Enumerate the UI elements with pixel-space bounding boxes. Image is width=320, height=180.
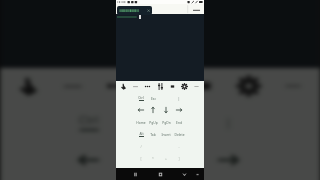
- button[interactable]: [117, 6, 152, 15]
- button[interactable]: Tab: [147, 128, 159, 140]
- button[interactable]: Stop: [187, 71, 220, 100]
- staticText: ]: [178, 156, 180, 160]
- button[interactable]: Settings sliders: [144, 71, 177, 100]
- button[interactable]: PgUp: [147, 116, 159, 128]
- button[interactable]: |: [173, 92, 185, 104]
- button[interactable]: Settings sliders: [156, 82, 165, 91]
- staticText: /: [140, 144, 142, 148]
- staticText: -: [178, 144, 180, 148]
- button[interactable]: Down: [160, 104, 172, 116]
- button[interactable]: Insert: [160, 128, 172, 140]
- button[interactable]: More: [143, 82, 152, 91]
- button[interactable]: Overflow: [192, 82, 201, 91]
- button[interactable]: [: [135, 152, 147, 164]
- button[interactable]: Copy: [131, 82, 140, 91]
- button[interactable]: Settings: [180, 82, 189, 91]
- staticText: *: [152, 156, 154, 160]
- button[interactable]: PgDn: [160, 116, 172, 128]
- button[interactable]: *: [147, 152, 159, 164]
- button[interactable]: Down: [160, 141, 202, 179]
- button[interactable]: Home: [135, 116, 147, 128]
- button[interactable]: Delete: [173, 128, 185, 140]
- button[interactable]: Alt: [135, 128, 147, 140]
- button[interactable]: End: [173, 116, 185, 128]
- button[interactable]: Dismiss keyboard: [130, 168, 140, 180]
- staticText: Ctrl: [138, 95, 144, 99]
- staticText: Alt: [139, 131, 144, 135]
- button[interactable]: Left: [135, 104, 147, 116]
- button[interactable]: Up: [147, 104, 159, 116]
- staticText: Esc: [151, 96, 156, 100]
- button[interactable]: Keyboard: [119, 82, 128, 91]
- button[interactable]: Left: [67, 141, 109, 179]
- button[interactable]: More: [100, 71, 133, 100]
- button[interactable]: Settings: [232, 71, 265, 100]
- button[interactable]: Keyboard: [192, 168, 202, 180]
- button[interactable]: Recents: [179, 168, 189, 180]
- button[interactable]: Ctrl: [67, 103, 109, 141]
- button[interactable]: [160, 103, 202, 141]
- button[interactable]: Esc: [114, 103, 156, 141]
- staticText: End: [176, 120, 182, 124]
- staticText: PgUp: [149, 120, 158, 124]
- staticText: +: [165, 156, 167, 160]
- staticText: [: [140, 156, 142, 160]
- button[interactable]: Esc: [147, 92, 159, 104]
- staticText: Tab: [150, 132, 156, 136]
- button[interactable]: ]: [173, 152, 185, 164]
- button[interactable]: Right: [207, 141, 249, 179]
- button[interactable]: Home: [155, 168, 165, 180]
- staticText: Home: [136, 120, 146, 124]
- staticText: Esc: [126, 115, 144, 129]
- button[interactable]: Stop: [168, 82, 177, 91]
- button[interactable]: PgUp: [114, 179, 156, 180]
- staticText: Delete: [174, 132, 185, 136]
- button[interactable]: Right: [173, 104, 185, 116]
- button[interactable]: Keyboard: [11, 71, 44, 100]
- button[interactable]: Up: [114, 141, 156, 179]
- staticText: PgDn: [162, 120, 171, 124]
- button[interactable]: Ctrl: [135, 92, 147, 104]
- staticText: Insert: [161, 132, 171, 136]
- staticText: |: [178, 96, 180, 100]
